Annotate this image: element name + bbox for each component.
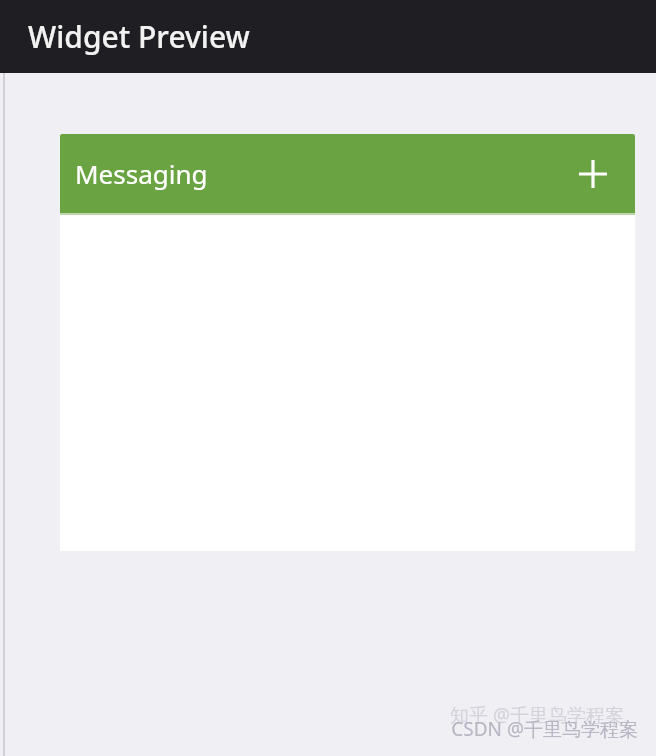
staticText: Widget Preview [28,16,250,57]
staticText: Messaging [75,156,208,191]
button[interactable]: Messaging [60,134,635,213]
button[interactable]: Add new message [571,152,615,196]
staticText: 知乎 @千里鸟学程案 [449,702,624,728]
staticText: CSDN @千里鸟学程案 [451,716,638,742]
